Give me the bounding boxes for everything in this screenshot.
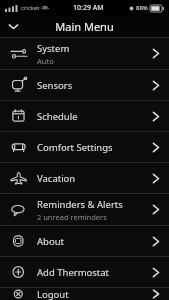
button[interactable]: Reminders & Alerts <box>0 194 169 225</box>
staticText: Schedule <box>37 110 78 123</box>
button[interactable]: Schedule <box>0 101 169 131</box>
button[interactable]: Collapse <box>0 16 26 37</box>
button[interactable]: Sensors <box>0 70 169 100</box>
button[interactable]: Add Thermostat <box>0 257 169 287</box>
staticText: About <box>37 235 64 248</box>
staticText: 10:29 AM <box>73 3 104 13</box>
staticText: 2 unread reminders <box>37 212 107 222</box>
button[interactable]: System <box>0 38 169 69</box>
button[interactable]: Vacation <box>0 163 169 193</box>
button[interactable]: Logout <box>0 288 169 300</box>
button[interactable]: Comfort Settings <box>0 132 169 162</box>
staticText: Sensors <box>37 79 73 92</box>
staticText: Reminders & Alerts <box>37 198 123 211</box>
button[interactable]: About <box>0 226 169 256</box>
staticText: 88% <box>136 4 148 12</box>
staticText: Logout <box>37 288 69 300</box>
staticText: Comfort Settings <box>37 141 113 154</box>
staticText: Vacation <box>37 172 76 185</box>
staticText: Auto <box>37 56 54 66</box>
staticText: System <box>37 42 70 55</box>
staticText: Add Thermostat <box>37 266 110 279</box>
staticText: Main Menu <box>55 19 114 34</box>
staticText: cricket <box>21 4 40 12</box>
